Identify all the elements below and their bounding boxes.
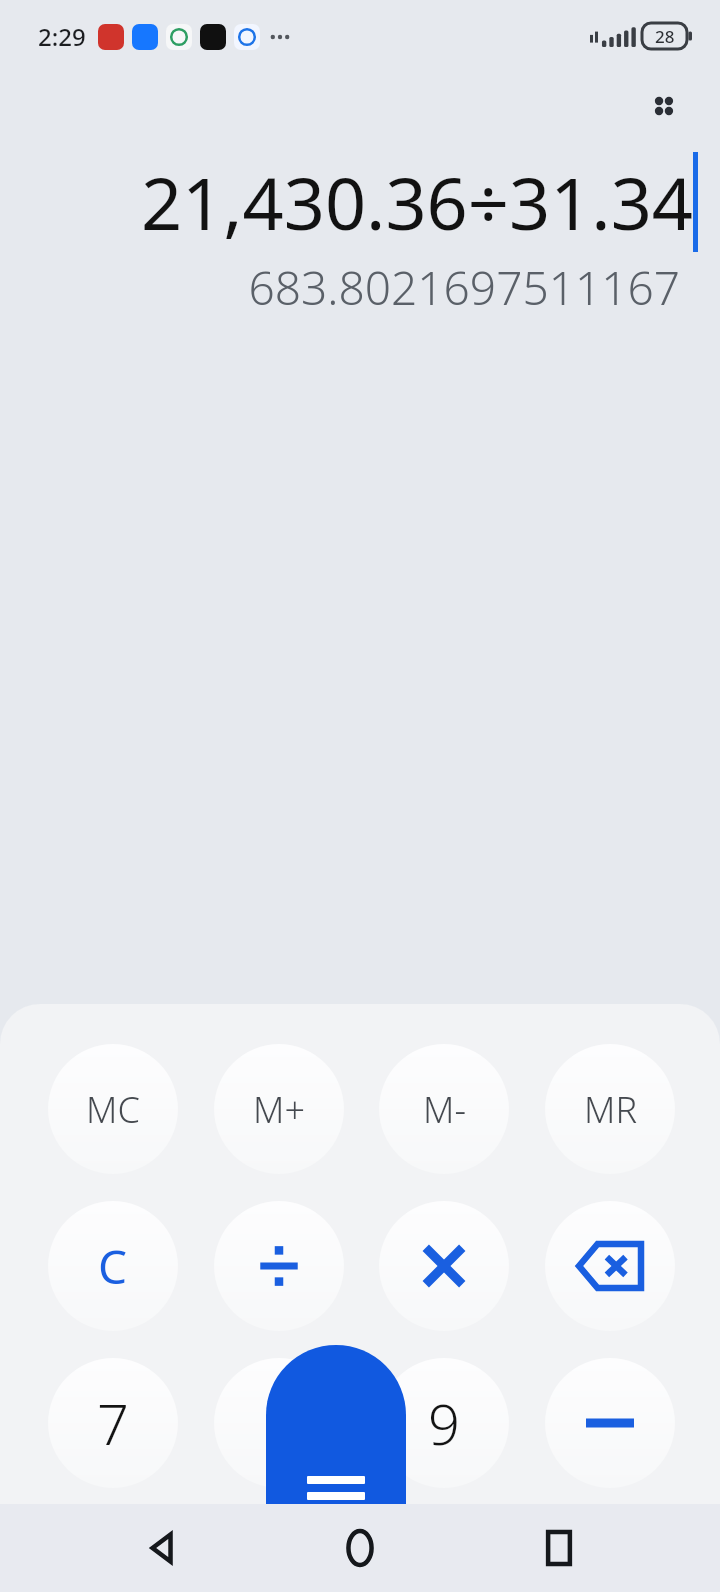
- staticText: C: [98, 1235, 128, 1298]
- staticText: 28: [655, 25, 675, 48]
- button[interactable]: Divide: [214, 1201, 344, 1331]
- button[interactable]: Equals: [266, 1345, 406, 1504]
- staticText: 8: [263, 1385, 295, 1461]
- button[interactable]: 7: [48, 1358, 178, 1488]
- button[interactable]: MR: [545, 1044, 675, 1174]
- staticText: MC: [86, 1085, 140, 1134]
- staticText: 9: [428, 1385, 460, 1461]
- staticText: M+: [253, 1085, 305, 1134]
- button[interactable]: C: [48, 1201, 178, 1331]
- button[interactable]: Minus: [545, 1358, 675, 1488]
- button[interactable]: M+: [214, 1044, 344, 1174]
- staticText: M-: [423, 1085, 466, 1134]
- button[interactable]: Recents: [521, 1510, 597, 1586]
- button[interactable]: MC: [48, 1044, 178, 1174]
- button[interactable]: Home: [322, 1510, 398, 1586]
- button[interactable]: 8: [214, 1358, 344, 1488]
- staticText: 21,430.36÷31.34: [140, 153, 693, 251]
- button[interactable]: M-: [379, 1044, 509, 1174]
- staticText: 2:29: [38, 20, 86, 53]
- button[interactable]: Back: [123, 1510, 199, 1586]
- button[interactable]: Backspace: [545, 1201, 675, 1331]
- staticText: 683.8021697511167: [0, 256, 680, 319]
- staticText: MR: [584, 1085, 637, 1134]
- staticText: 7: [97, 1385, 129, 1461]
- button[interactable]: More options: [640, 82, 688, 130]
- button[interactable]: 9: [379, 1358, 509, 1488]
- button[interactable]: Multiply: [379, 1201, 509, 1331]
